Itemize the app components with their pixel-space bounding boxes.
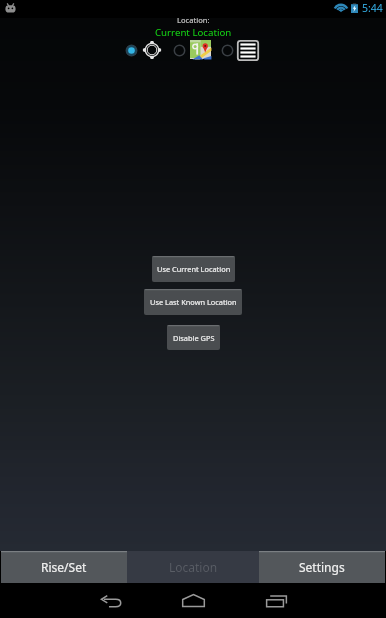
button[interactable]: Back bbox=[87, 585, 135, 617]
staticText: Settings bbox=[299, 559, 345, 575]
button[interactable]: Location bbox=[127, 551, 259, 583]
button[interactable]: Select current location bbox=[125, 44, 138, 57]
staticText: Current Location bbox=[155, 26, 232, 39]
staticText: Location: bbox=[177, 15, 210, 25]
button[interactable]: Select from list bbox=[221, 44, 234, 57]
staticText: Use Last Known Location bbox=[150, 297, 237, 307]
button[interactable]: Pick on map bbox=[190, 39, 211, 60]
button[interactable]: Use Current Location bbox=[152, 256, 235, 282]
button[interactable]: Choose from list bbox=[237, 39, 259, 61]
staticText: Use Current Location bbox=[157, 264, 231, 274]
staticText: Rise/Set bbox=[41, 559, 87, 575]
staticText: Location bbox=[169, 559, 218, 575]
staticText: 5:44 bbox=[362, 1, 383, 15]
button[interactable]: Rise/Set bbox=[1, 551, 127, 583]
button[interactable]: Use GPS location bbox=[141, 39, 163, 61]
button[interactable]: Select map location bbox=[173, 44, 186, 57]
button[interactable]: Use Last Known Location bbox=[144, 289, 242, 315]
button[interactable]: Home bbox=[169, 584, 217, 616]
button[interactable]: Disable GPS bbox=[167, 325, 220, 350]
button[interactable]: Recent apps bbox=[252, 585, 300, 617]
button[interactable]: Settings bbox=[259, 551, 385, 583]
staticText: Disable GPS bbox=[173, 333, 215, 343]
